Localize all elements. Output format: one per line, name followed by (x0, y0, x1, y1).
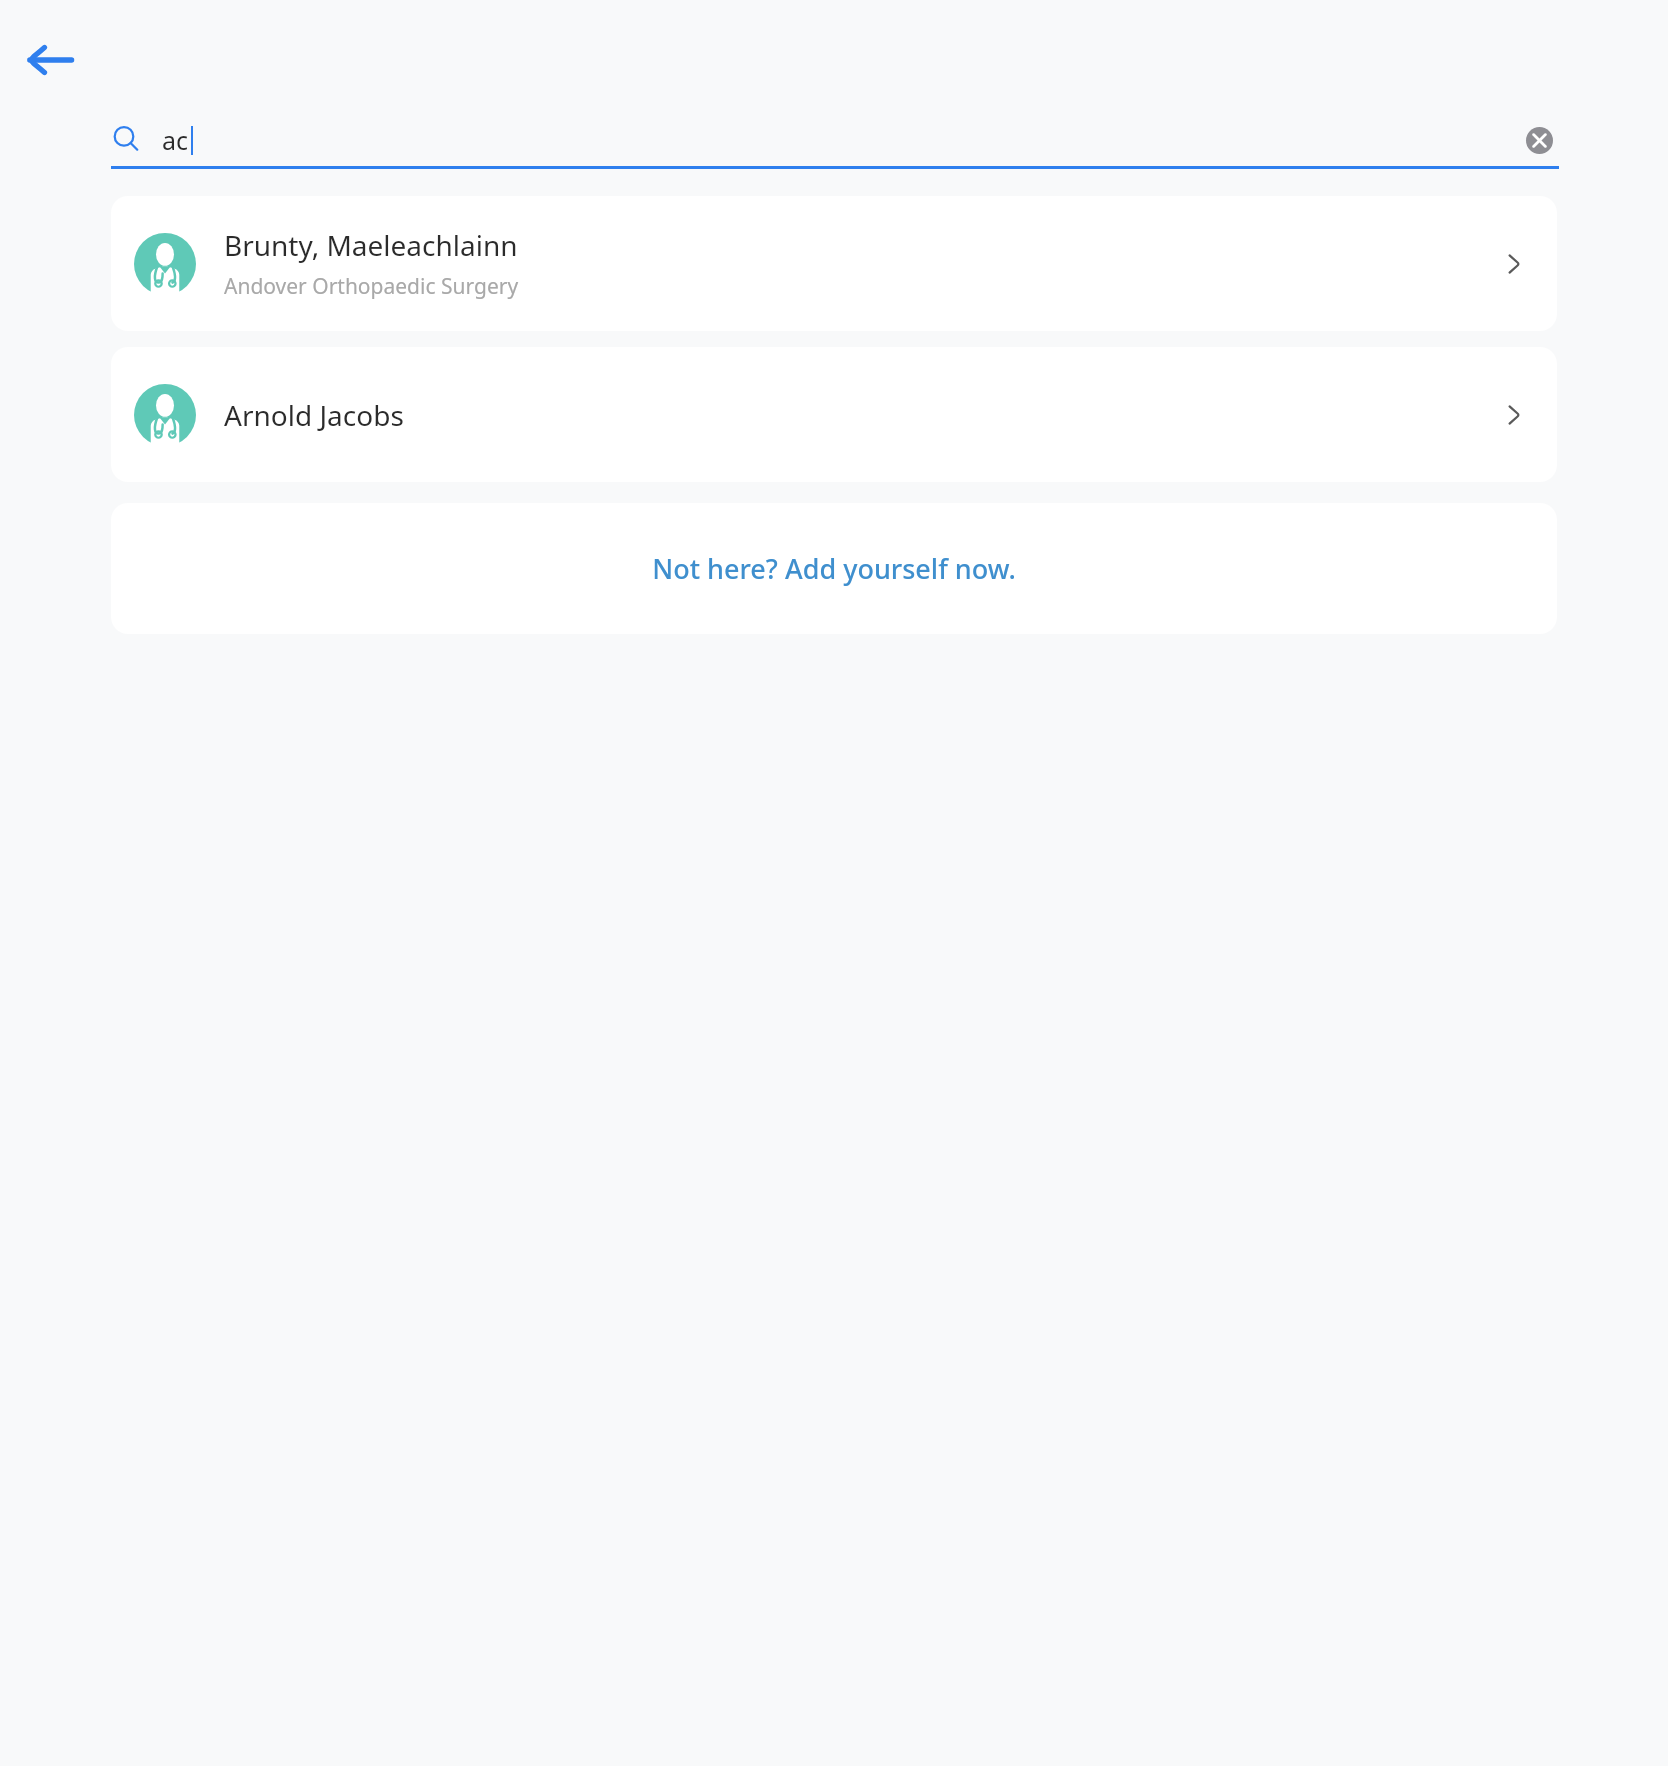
staticText: ac (162, 123, 189, 157)
button[interactable]: Clear search (1519, 120, 1559, 160)
button[interactable]: Not here? Add yourself now. (111, 503, 1557, 634)
button[interactable]: ac (111, 114, 1559, 166)
staticText: Not here? Add yourself now. (652, 550, 1016, 587)
button[interactable]: Brunty, Maeleachlainn (111, 196, 1557, 331)
button[interactable]: Arnold Jacobs (111, 347, 1557, 482)
staticText: Arnold Jacobs (224, 396, 404, 434)
staticText: Andover Orthopaedic Surgery (224, 272, 519, 301)
button[interactable]: Back (18, 28, 82, 92)
staticText: Brunty, Maeleachlainn (224, 226, 518, 264)
